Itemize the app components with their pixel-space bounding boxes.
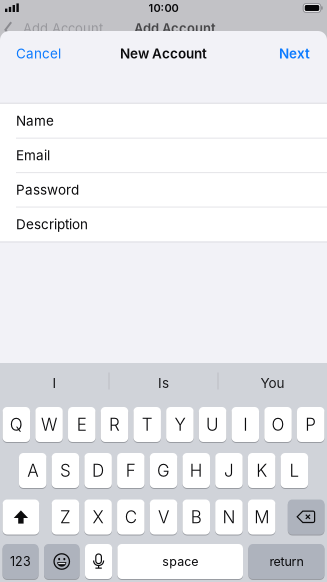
staticText: H (190, 460, 203, 481)
staticText: 123 (10, 554, 31, 569)
staticText: C (125, 507, 137, 527)
button[interactable]: I (2, 364, 106, 402)
staticText: F (126, 460, 136, 481)
button[interactable]: B (182, 499, 210, 534)
staticText: 10:00 (148, 1, 178, 15)
staticText: I (243, 414, 247, 435)
button[interactable]: G (150, 453, 177, 488)
staticText: X (93, 507, 104, 527)
button[interactable]: R (101, 407, 128, 442)
button[interactable]: L (281, 453, 308, 488)
staticText: L (289, 460, 299, 481)
staticText: Z (60, 507, 71, 527)
staticText: Q (10, 414, 23, 435)
staticText: Name (16, 113, 54, 129)
button[interactable]: N (215, 499, 243, 534)
staticText: Add Account (134, 20, 216, 36)
button[interactable]: Name (0, 104, 327, 138)
staticText: New Account (120, 45, 207, 62)
button[interactable]: Dictate (85, 544, 112, 579)
button[interactable]: F (117, 453, 145, 488)
staticText: N (222, 507, 235, 527)
button[interactable]: Is (111, 364, 215, 402)
button[interactable]: S (52, 453, 79, 488)
staticText: P (305, 414, 316, 435)
staticText: W (41, 414, 57, 435)
staticText: U (206, 414, 219, 435)
staticText: G (157, 460, 170, 481)
button[interactable]: J (215, 453, 243, 488)
staticText: Next (279, 45, 310, 62)
button[interactable]: T (133, 407, 161, 442)
staticText: Description (16, 216, 88, 232)
button[interactable]: Email (0, 138, 327, 173)
button[interactable]: Next (279, 45, 310, 62)
staticText: B (191, 507, 202, 527)
button[interactable]: Y (166, 407, 194, 442)
button[interactable]: U (199, 407, 226, 442)
button[interactable]: V (150, 499, 177, 534)
staticText: K (256, 460, 267, 481)
staticText: E (77, 414, 87, 435)
button[interactable]: O (264, 407, 292, 442)
button[interactable]: 123 (3, 544, 38, 579)
button[interactable]: H (182, 453, 210, 488)
staticText: D (92, 460, 104, 481)
button[interactable]: C (117, 499, 145, 534)
staticText: O (271, 414, 284, 435)
staticText: space (162, 554, 198, 569)
button[interactable]: D (84, 453, 112, 488)
button[interactable]: I (232, 407, 259, 442)
staticText: Y (174, 414, 185, 435)
button[interactable]: Q (3, 407, 30, 442)
staticText: T (142, 414, 153, 435)
button[interactable]: M (248, 499, 275, 534)
button[interactable]: P (297, 407, 324, 442)
button[interactable]: Cancel (16, 45, 61, 62)
button[interactable]: Emoji (44, 544, 79, 579)
button[interactable]: Password (0, 173, 327, 207)
staticText: S (60, 460, 71, 481)
staticText: Password (16, 182, 79, 198)
staticText: Email (16, 147, 50, 163)
button[interactable]: Shift (3, 499, 39, 534)
staticText: A (27, 460, 38, 481)
button[interactable]: X (84, 499, 112, 534)
button[interactable]: space (117, 544, 243, 579)
staticText: Cancel (16, 45, 61, 62)
staticText: You (260, 375, 284, 391)
button[interactable]: W (35, 407, 63, 442)
staticText: M (254, 507, 269, 527)
button[interactable]: return (248, 544, 324, 579)
staticText: J (224, 460, 234, 481)
button[interactable]: You (220, 364, 324, 402)
button[interactable]: E (68, 407, 95, 442)
button[interactable]: Description (0, 207, 327, 242)
staticText: R (109, 414, 120, 435)
button[interactable]: Delete (288, 499, 324, 534)
staticText: V (158, 507, 169, 527)
staticText: Add Account (23, 20, 103, 36)
button[interactable]: A (19, 453, 46, 488)
staticText: return (269, 554, 303, 569)
staticText: I (52, 375, 56, 391)
button[interactable]: Z (52, 499, 79, 534)
button[interactable]: K (248, 453, 275, 488)
staticText: Is (158, 375, 169, 391)
